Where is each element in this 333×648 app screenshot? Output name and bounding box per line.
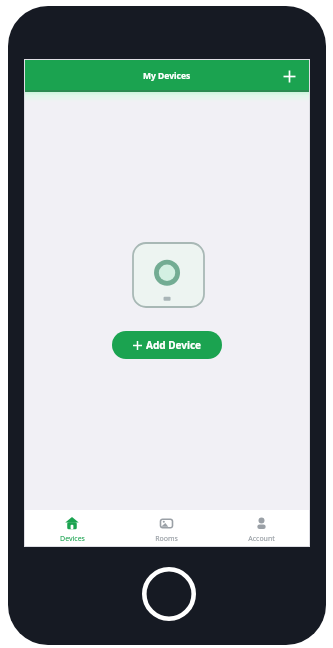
staticText: Add Device <box>146 338 202 352</box>
button[interactable]: Rooms <box>119 510 214 546</box>
button[interactable]: Home <box>142 567 196 621</box>
staticText: Rooms <box>155 534 178 544</box>
staticText: Devices <box>60 534 85 544</box>
button[interactable]: Add Device <box>112 331 222 359</box>
button[interactable]: Add device <box>278 65 300 87</box>
button[interactable]: Account <box>214 510 309 546</box>
button[interactable]: Devices <box>25 510 119 546</box>
staticText: My Devices <box>143 70 191 82</box>
staticText: Account <box>248 534 275 544</box>
